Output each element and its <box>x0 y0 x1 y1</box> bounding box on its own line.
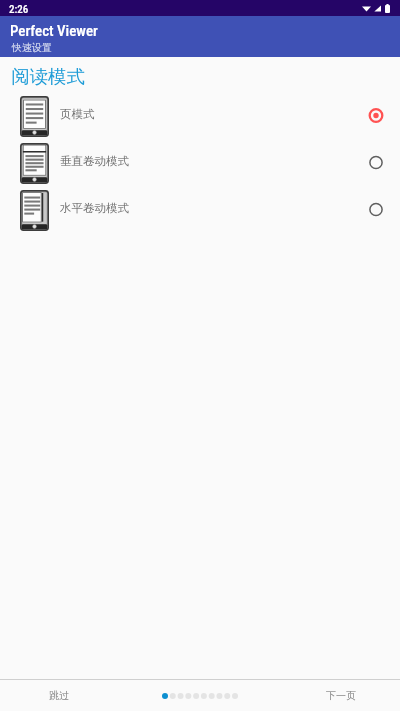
staticText: 2:26 <box>9 3 29 16</box>
button[interactable]: 垂直卷动模式 <box>0 140 400 187</box>
button[interactable]: 跳过 <box>0 680 118 711</box>
button[interactable]: 页模式 <box>0 93 400 140</box>
staticText: 跳过 <box>49 689 69 702</box>
staticText: 快速设置 <box>12 41 52 54</box>
staticText: 垂直卷动模式 <box>60 154 129 168</box>
staticText: 水平卷动模式 <box>60 201 129 215</box>
button[interactable]: 下一页 <box>282 680 400 711</box>
staticText: Perfect Viewer <box>10 22 98 40</box>
button[interactable]: 水平卷动模式 <box>0 187 400 234</box>
staticText: 阅读模式 <box>11 65 85 88</box>
staticText: 下一页 <box>326 689 356 702</box>
staticText: 页模式 <box>60 107 95 121</box>
